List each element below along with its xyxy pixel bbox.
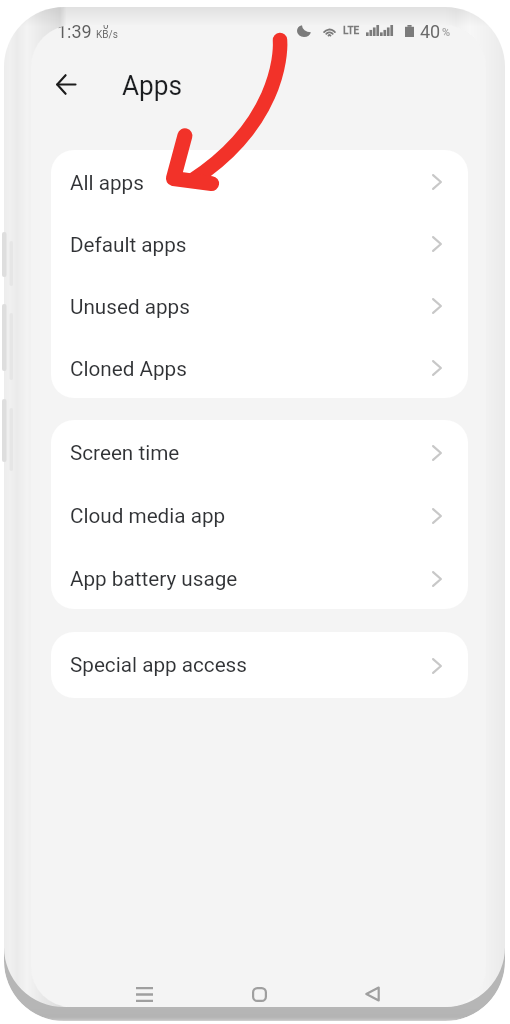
- staticText: Special app access: [70, 653, 247, 678]
- button[interactable]: Unused apps: [51, 274, 468, 336]
- staticText: Screen time: [70, 441, 179, 466]
- button[interactable]: Recents: [120, 970, 168, 1007]
- button[interactable]: Default apps: [51, 212, 468, 274]
- button[interactable]: Special app access: [51, 632, 468, 698]
- staticText: 1:39: [57, 25, 92, 42]
- staticText: All apps: [70, 171, 144, 196]
- staticText: Apps: [122, 69, 183, 102]
- staticText: 0: [103, 25, 109, 32]
- staticText: Unused apps: [70, 295, 190, 320]
- staticText: Cloud media app: [70, 504, 226, 529]
- staticText: Default apps: [70, 233, 187, 258]
- staticText: Cloned Apps: [70, 357, 187, 382]
- button[interactable]: Home: [235, 970, 283, 1007]
- button[interactable]: All apps: [51, 150, 468, 212]
- staticText: 40: [420, 25, 441, 42]
- staticText: App battery usage: [70, 567, 237, 592]
- button[interactable]: Back: [348, 970, 396, 1007]
- staticText: LTE: [343, 25, 360, 37]
- staticText: %: [442, 26, 451, 39]
- button[interactable]: Screen time: [51, 420, 468, 483]
- staticText: KB/s: [96, 29, 118, 41]
- button[interactable]: App battery usage: [51, 546, 468, 609]
- button[interactable]: Cloud media app: [51, 483, 468, 546]
- button[interactable]: Back: [42, 60, 90, 108]
- button[interactable]: Cloned Apps: [51, 336, 468, 398]
